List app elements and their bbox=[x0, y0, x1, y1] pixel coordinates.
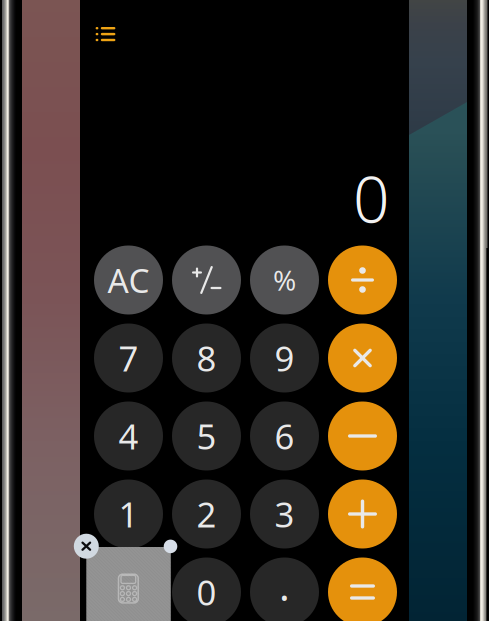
button[interactable]: 5 bbox=[0, 0, 489, 621]
staticText: 1 bbox=[118, 491, 138, 537]
button[interactable]: Multiply bbox=[0, 0, 489, 621]
staticText: 9 bbox=[274, 335, 294, 381]
staticText: 8 bbox=[196, 335, 216, 381]
button[interactable]: Equals bbox=[0, 0, 489, 621]
staticText: 4 bbox=[118, 413, 138, 459]
button[interactable]: 0 bbox=[0, 0, 489, 621]
button[interactable]: 7 bbox=[0, 0, 489, 621]
button[interactable]: 3 bbox=[0, 0, 489, 621]
button[interactable]: Divide bbox=[0, 0, 489, 621]
button[interactable]: 2 bbox=[0, 0, 489, 621]
button[interactable]: 1 bbox=[0, 0, 489, 621]
button[interactable]: Minus bbox=[0, 0, 489, 621]
staticText: 0 bbox=[353, 155, 390, 240]
button[interactable]: Plus bbox=[0, 0, 489, 621]
staticText: 6 bbox=[274, 413, 294, 459]
button[interactable] bbox=[0, 0, 489, 621]
button[interactable]: 9 bbox=[0, 0, 489, 621]
button[interactable]: % bbox=[0, 0, 489, 621]
button[interactable]: AC bbox=[0, 0, 489, 621]
staticText: 5 bbox=[196, 413, 216, 459]
staticText: 0 bbox=[196, 569, 216, 615]
staticText: . bbox=[279, 559, 290, 612]
button[interactable]: 4 bbox=[0, 0, 489, 621]
button[interactable]: Remove bbox=[74, 534, 99, 559]
button[interactable]: . bbox=[0, 0, 489, 621]
staticText: 3 bbox=[274, 491, 294, 537]
staticText: 2 bbox=[196, 491, 216, 537]
staticText: AC bbox=[107, 258, 149, 302]
button[interactable]: 8 bbox=[0, 0, 489, 621]
button[interactable]: History bbox=[0, 0, 489, 621]
staticText: 7 bbox=[118, 335, 138, 381]
staticText: % bbox=[273, 261, 296, 299]
button[interactable]: 6 bbox=[0, 0, 489, 621]
button[interactable]: Plus minus bbox=[0, 0, 489, 621]
